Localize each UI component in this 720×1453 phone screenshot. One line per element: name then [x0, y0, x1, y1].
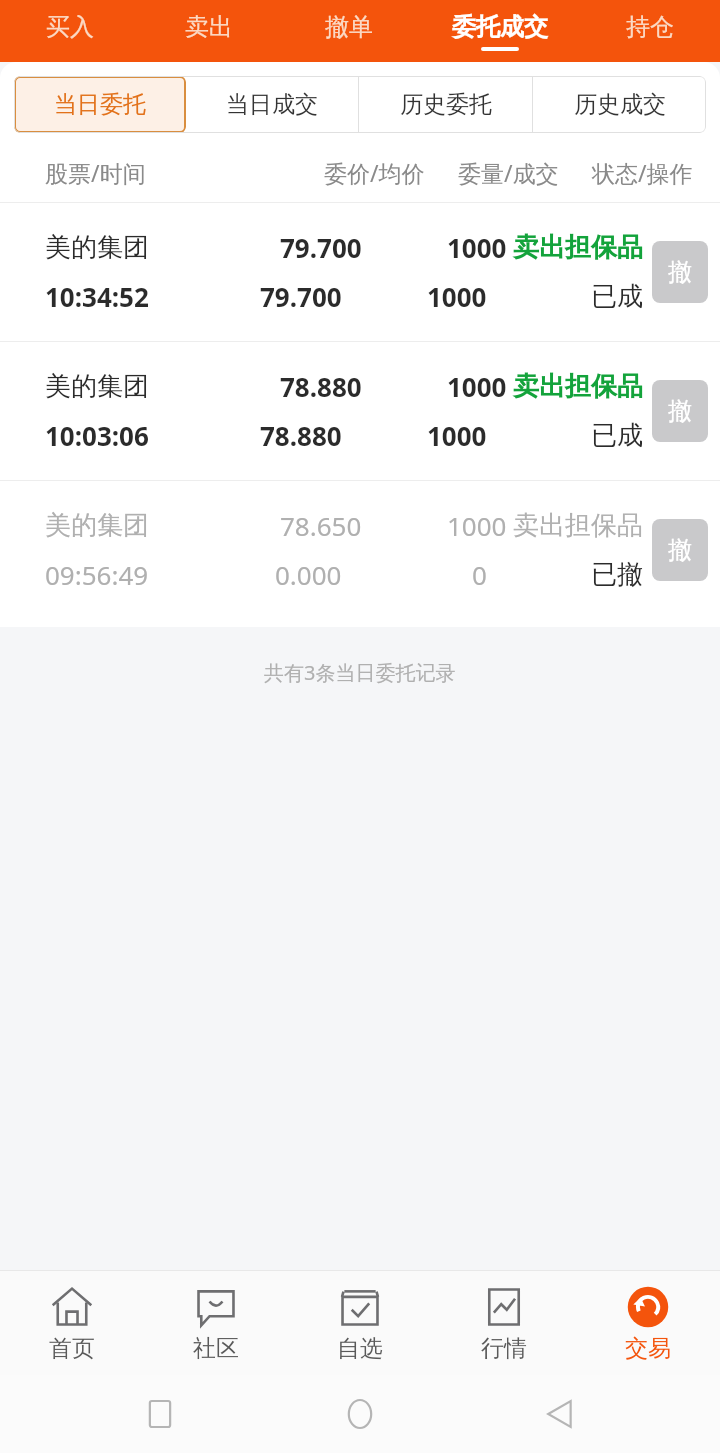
- staticText: 首页: [49, 1334, 95, 1363]
- button[interactable]: 行情: [432, 1271, 576, 1375]
- staticText: 历史成交: [574, 90, 666, 119]
- staticText: 撤: [668, 257, 692, 287]
- staticText: 当日成交: [226, 90, 318, 119]
- button[interactable]: 历史成交: [533, 76, 706, 133]
- staticText: 已成: [591, 419, 643, 452]
- button[interactable]: 交易: [576, 1271, 720, 1375]
- staticText: 委价/均价: [324, 157, 425, 188]
- staticText: 持仓: [626, 12, 674, 42]
- button[interactable]: 当日委托: [14, 76, 186, 133]
- staticText: 撤: [668, 535, 692, 565]
- staticText: 历史委托: [400, 90, 492, 119]
- button[interactable]: 美的集团: [0, 481, 720, 619]
- button[interactable]: 委托成交: [419, 0, 580, 62]
- staticText: 撤单: [325, 12, 373, 42]
- staticText: 卖出担保品: [513, 370, 643, 403]
- staticText: 美的集团: [45, 509, 149, 542]
- button[interactable]: 撤单: [279, 0, 419, 62]
- staticText: 社区: [193, 1334, 239, 1363]
- staticText: 委量/成交: [458, 157, 559, 188]
- staticText: 1000: [427, 418, 487, 453]
- staticText: 股票/时间: [45, 157, 146, 188]
- staticText: 10:34:52: [45, 279, 149, 314]
- staticText: 1000: [447, 369, 507, 404]
- staticText: 0.000: [275, 557, 342, 592]
- staticText: 78.880: [280, 369, 362, 404]
- staticText: 79.700: [280, 230, 362, 265]
- staticText: 1000: [427, 279, 487, 314]
- button[interactable]: 撤单: [652, 380, 708, 442]
- staticText: 10:03:06: [45, 418, 149, 453]
- staticText: 行情: [481, 1334, 527, 1363]
- staticText: 已撤: [591, 558, 643, 591]
- staticText: 78.650: [280, 508, 362, 543]
- button[interactable]: 当日成交: [186, 76, 358, 133]
- button[interactable]: Back: [530, 1384, 590, 1444]
- staticText: 卖出: [185, 12, 233, 42]
- staticText: 09:56:49: [45, 557, 149, 592]
- staticText: 委托成交: [452, 12, 548, 42]
- staticText: 已成: [591, 280, 643, 313]
- staticText: 美的集团: [45, 231, 149, 264]
- staticText: 当日委托: [54, 90, 146, 119]
- staticText: 1000: [447, 508, 507, 543]
- button[interactable]: 撤单: [652, 241, 708, 303]
- button[interactable]: 卖出: [139, 0, 279, 62]
- button[interactable]: Recent apps: [130, 1384, 190, 1444]
- staticText: 卖出担保品: [513, 509, 643, 542]
- button[interactable]: 社区: [144, 1271, 288, 1375]
- button[interactable]: 首页: [0, 1271, 144, 1375]
- button[interactable]: 持仓: [580, 0, 720, 62]
- staticText: 状态/操作: [592, 157, 693, 188]
- staticText: 自选: [337, 1334, 383, 1363]
- staticText: 美的集团: [45, 370, 149, 403]
- staticText: 撤: [668, 396, 692, 426]
- button[interactable]: 自选: [288, 1271, 432, 1375]
- staticText: 买入: [46, 12, 94, 42]
- staticText: 79.700: [260, 279, 342, 314]
- button[interactable]: 撤单: [652, 519, 708, 581]
- staticText: 0: [472, 557, 487, 592]
- staticText: 1000: [447, 230, 507, 265]
- staticText: 共有3条当日委托记录: [264, 659, 456, 686]
- button[interactable]: 历史委托: [359, 76, 532, 133]
- staticText: 卖出担保品: [513, 231, 643, 264]
- button[interactable]: 美的集团: [0, 203, 720, 341]
- button[interactable]: 买入: [0, 0, 139, 62]
- button[interactable]: 美的集团: [0, 342, 720, 480]
- staticText: 交易: [625, 1334, 671, 1363]
- button[interactable]: Home: [330, 1384, 390, 1444]
- staticText: 78.880: [260, 418, 342, 453]
